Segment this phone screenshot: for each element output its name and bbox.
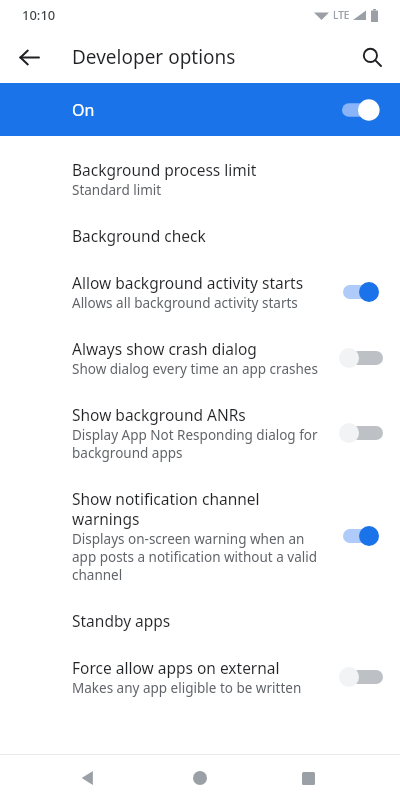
button[interactable]: Show background ANRs [340, 420, 386, 446]
button[interactable]: Background process limit [0, 146, 400, 212]
staticText: Background process limit [72, 159, 257, 180]
staticText: Makes any app eligible to be written [72, 679, 302, 697]
button[interactable]: Search [352, 37, 392, 77]
staticText: Developer options [72, 44, 236, 70]
staticText: Show notification channel warnings [72, 488, 328, 529]
button[interactable]: Show background ANRs [0, 391, 400, 475]
staticText: Displays on-screen warning when an app p… [72, 530, 328, 584]
button[interactable]: Home [180, 758, 220, 798]
staticText: Allows all background activity starts [72, 294, 298, 312]
button[interactable]: Always show crash dialog [340, 345, 386, 371]
staticText: Standby apps [72, 610, 171, 631]
staticText: Always show crash dialog [72, 338, 257, 359]
button[interactable]: Force allow apps on external [340, 664, 386, 690]
button[interactable]: On [0, 83, 400, 136]
staticText: Display App Not Responding dialog for ba… [72, 426, 328, 462]
button[interactable]: Always show crash dialog [0, 325, 400, 391]
staticText: Allow background activity starts [72, 272, 304, 293]
staticText: Force allow apps on external [72, 657, 280, 678]
staticText: Background check [72, 225, 206, 246]
staticText: Show dialog every time an app crashes [72, 360, 318, 378]
button[interactable]: Background check [0, 212, 400, 259]
button[interactable]: Force allow apps on external [0, 644, 400, 710]
button[interactable]: Recent apps [288, 758, 328, 798]
button[interactable]: Show notification channel warnings [0, 475, 400, 597]
staticText: On [72, 99, 95, 121]
button[interactable]: Show notification channel warnings [340, 523, 386, 549]
staticText: LTE [333, 8, 350, 22]
button[interactable]: Allow background activity starts [0, 259, 400, 325]
button[interactable]: Back [10, 38, 48, 76]
button[interactable]: Standby apps [0, 597, 400, 644]
staticText: Standard limit [72, 181, 162, 199]
button[interactable]: Back [68, 758, 108, 798]
staticText: Show background ANRs [72, 404, 246, 425]
button[interactable]: Allow background activity starts [340, 279, 386, 305]
staticText: 10:10 [22, 6, 56, 24]
